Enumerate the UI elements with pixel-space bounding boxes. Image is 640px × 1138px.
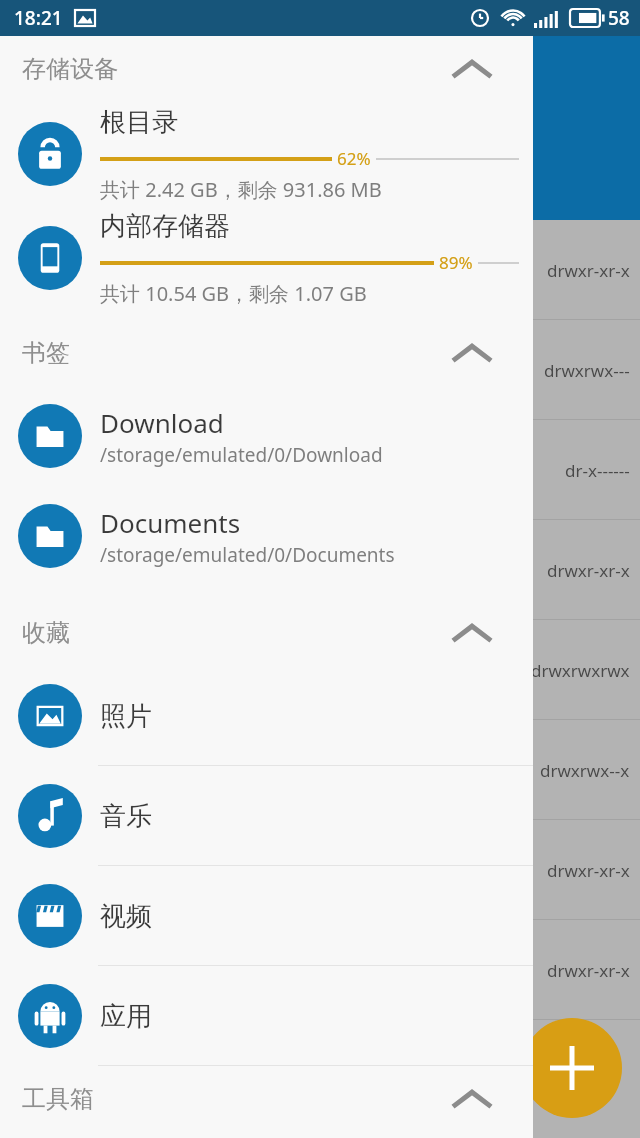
button[interactable]: drwxrwx--x — [0, 720, 640, 820]
staticText: 书签 — [22, 338, 70, 368]
staticText: 62% — [337, 147, 371, 170]
button[interactable]: 应用 — [0, 966, 533, 1066]
button[interactable]: 照片 — [0, 666, 533, 766]
button[interactable]: Add — [522, 1018, 622, 1118]
staticText: 共计 10.54 GB，剩余 1.07 GB — [100, 280, 367, 307]
staticText: 89% — [439, 251, 473, 274]
other: Collapse — [455, 1082, 489, 1116]
button[interactable]: drwxrwx--- — [0, 320, 640, 420]
button[interactable]: 音乐 — [0, 766, 533, 866]
button[interactable]: 书签 — [0, 320, 533, 386]
button[interactable]: drwxr-xr-x — [0, 920, 640, 1020]
staticText: 音乐 — [100, 800, 152, 833]
staticText: 18:21 — [14, 5, 63, 31]
staticText: 存储设备 — [22, 54, 118, 84]
staticText: drwxrwx--- — [544, 359, 630, 382]
button[interactable]: drwxrwxrwx — [0, 620, 640, 720]
button[interactable]: Documents — [0, 486, 533, 586]
staticText: drwxr-xr-x — [547, 559, 630, 582]
staticText: /storage/emulated/0/Documents — [100, 542, 395, 568]
button[interactable]: 内部存储器 — [0, 206, 533, 310]
other: Collapse — [455, 336, 489, 370]
button[interactable]: Download — [0, 386, 533, 486]
button[interactable]: drwxr-xr-x — [0, 520, 640, 620]
staticText: 照片 — [100, 700, 152, 733]
button[interactable]: 收藏 — [0, 600, 533, 666]
staticText: 应用 — [100, 1000, 152, 1033]
staticText: drwxr-xr-x — [547, 859, 630, 882]
staticText: 内部存储器 — [100, 210, 230, 243]
button[interactable]: drwxr-xr-x — [0, 220, 640, 320]
other: Collapse — [455, 616, 489, 650]
button[interactable]: 工具箱 — [0, 1066, 533, 1132]
staticText: drwxr-xr-x — [547, 959, 630, 982]
other: Collapse — [455, 52, 489, 86]
staticText: drwxrwxrwx — [531, 659, 630, 682]
button[interactable]: 视频 — [0, 866, 533, 966]
staticText: 58 — [608, 5, 630, 31]
button[interactable]: 根目录 — [0, 102, 533, 206]
staticText: /storage/emulated/0/Download — [100, 442, 383, 468]
staticText: drwxrwx--x — [540, 759, 630, 782]
staticText: dr-x------ — [565, 459, 630, 482]
button[interactable]: 存储设备 — [0, 36, 533, 102]
staticText: 共计 2.42 GB，剩余 931.86 MB — [100, 176, 382, 203]
staticText: Download — [100, 405, 224, 440]
staticText: 视频 — [100, 900, 152, 933]
button[interactable]: dr-x------ — [0, 420, 640, 520]
staticText: 收藏 — [22, 618, 70, 648]
staticText: Documents — [100, 505, 241, 540]
staticText: 根目录 — [100, 106, 178, 139]
staticText: 工具箱 — [22, 1084, 94, 1114]
button[interactable]: drwxr-xr-x — [0, 820, 640, 920]
staticText: drwxr-xr-x — [547, 259, 630, 282]
